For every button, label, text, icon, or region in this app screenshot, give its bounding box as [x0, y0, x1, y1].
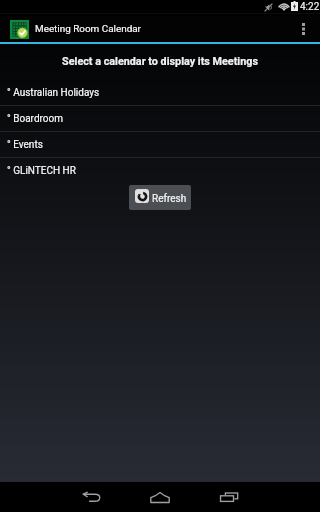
- button[interactable]: Back: [72, 482, 112, 512]
- staticText: Refresh: [152, 193, 187, 205]
- button[interactable]: Refresh: [129, 185, 191, 210]
- button[interactable]: ° Events: [0, 132, 320, 157]
- button[interactable]: ° Boardroom: [0, 106, 320, 131]
- staticText: ° Australian Holidays: [7, 87, 100, 99]
- button[interactable]: Home: [140, 482, 180, 512]
- staticText: Meeting Room Calendar: [35, 23, 141, 35]
- button[interactable]: More options: [295, 21, 311, 37]
- staticText: ° Boardroom: [7, 113, 63, 125]
- staticText: Select a calendar to display its Meeting…: [0, 55, 320, 68]
- staticText: 4:22: [300, 1, 320, 13]
- staticText: ° Events: [7, 139, 43, 151]
- button[interactable]: Recents: [209, 482, 249, 512]
- button[interactable]: ° Australian Holidays: [0, 80, 320, 105]
- staticText: ° GLiNTECH HR: [7, 165, 76, 177]
- button[interactable]: ° GLiNTECH HR: [0, 158, 320, 183]
